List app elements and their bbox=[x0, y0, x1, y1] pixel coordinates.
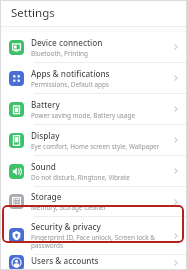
staticText: Users & accounts bbox=[31, 255, 99, 266]
staticText: Sound bbox=[31, 161, 56, 172]
staticText: Display bbox=[31, 130, 60, 141]
button[interactable]: Users & accounts bbox=[0, 255, 187, 270]
other: Open Device connection bbox=[171, 42, 181, 52]
staticText: Device connection bbox=[31, 37, 103, 48]
button[interactable]: Sound bbox=[0, 156, 187, 186]
staticText: Do not disturb, Ringtone, Vibrate bbox=[31, 173, 130, 182]
staticText: Eye comfort, Home screen style, Wallpape… bbox=[31, 142, 160, 151]
button[interactable]: Device connection bbox=[0, 32, 187, 62]
button[interactable]: Display bbox=[0, 125, 187, 155]
other: Open Security & privacy bbox=[171, 231, 181, 241]
staticText: Battery bbox=[31, 99, 60, 110]
staticText: Fingerprint ID, Face unlock, Screen lock… bbox=[31, 233, 155, 250]
other: Open Apps & notifications bbox=[171, 73, 181, 83]
staticText: Security & privacy bbox=[31, 221, 101, 232]
staticText: Power saving mode, Battery usage bbox=[31, 111, 136, 120]
staticText: Memory, Storage cleaner bbox=[31, 203, 107, 212]
staticText: Apps & notifications bbox=[31, 68, 110, 79]
button[interactable]: Battery bbox=[0, 94, 187, 124]
staticText: Permissions, Default apps bbox=[31, 80, 109, 89]
staticText: Storage bbox=[31, 191, 62, 202]
other: Open Battery bbox=[171, 104, 181, 114]
other: Open Users & accounts bbox=[171, 258, 181, 268]
button[interactable]: Storage bbox=[0, 187, 187, 216]
other: Open Sound bbox=[171, 166, 181, 176]
staticText: Bluetooth, Printing bbox=[31, 49, 88, 58]
staticText: Settings bbox=[11, 5, 55, 21]
button[interactable]: Security & privacy bbox=[0, 217, 187, 254]
staticText: Users, Cloud, Accounts bbox=[31, 267, 100, 270]
other: Open Storage bbox=[171, 197, 181, 207]
other: Open Display bbox=[171, 135, 181, 145]
button[interactable]: Apps & notifications bbox=[0, 63, 187, 93]
